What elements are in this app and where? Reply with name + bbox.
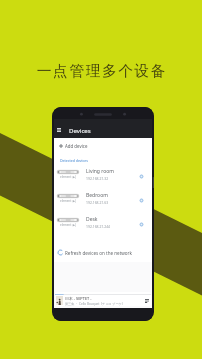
staticText: Detected devices — [60, 158, 88, 163]
staticText: 日本 - SEPTET - — [65, 296, 92, 301]
staticText: Desk — [86, 216, 98, 223]
button[interactable]: 日本 - SEPTET - — [55, 292, 151, 306]
staticText: Bedroom — [86, 192, 108, 199]
staticText: 192.168.21.32 — [86, 176, 109, 181]
staticText: element ▶| — [60, 223, 77, 227]
staticText: 第三集 ・ Cello Bouquet (チェロ ブーケ) — [65, 302, 123, 306]
other: Device settings — [139, 174, 144, 179]
button[interactable]: element ▶| — [54, 162, 152, 186]
staticText: 一点管理多个设备 — [1, 62, 202, 81]
button[interactable]: element ▶| — [54, 210, 152, 234]
staticText: 192.168.21.244 — [86, 224, 111, 229]
staticText: 192.168.21.63 — [86, 200, 109, 205]
other: Cast to device — [145, 299, 149, 303]
staticText: Living room — [86, 168, 114, 175]
staticText: element ▶| — [60, 175, 77, 179]
staticText: Refresh devices on the network — [65, 250, 132, 256]
button[interactable]: Add device — [54, 138, 152, 154]
other: Device settings — [139, 198, 144, 203]
staticText: Devices — [69, 126, 91, 134]
other: Device settings — [139, 222, 144, 227]
staticText: element ▶| — [60, 199, 77, 203]
button[interactable]: element ▶| — [54, 186, 152, 210]
button[interactable]: Refresh devices on the network — [54, 234, 152, 262]
staticText: Add device — [65, 143, 88, 149]
other: Open navigation menu — [57, 128, 61, 132]
button[interactable]: Open navigation menu — [54, 119, 152, 138]
